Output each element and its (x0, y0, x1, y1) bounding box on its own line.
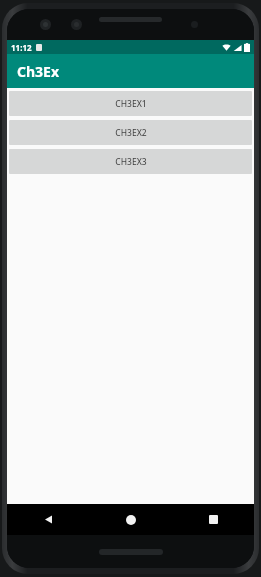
staticText: Ch3Ex (17, 62, 60, 81)
button[interactable]: Back (7, 504, 90, 535)
button[interactable]: Recent apps (172, 504, 254, 535)
button[interactable]: Home (90, 504, 172, 535)
button[interactable]: CH3EX2 (9, 120, 252, 145)
staticText: CH3EX2 (115, 127, 147, 139)
button[interactable]: CH3EX3 (9, 149, 252, 174)
staticText: CH3EX1 (115, 98, 147, 110)
button[interactable]: CH3EX1 (9, 91, 252, 116)
staticText: 11:12 (11, 42, 32, 53)
staticText: CH3EX3 (115, 156, 147, 168)
